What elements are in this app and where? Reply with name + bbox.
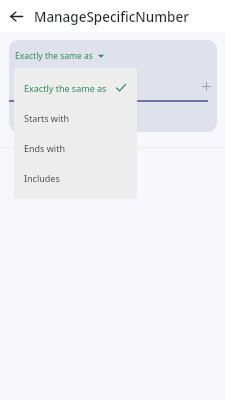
button[interactable]: Exactly the same as bbox=[14, 73, 137, 103]
staticText: Exactly the same as bbox=[24, 82, 107, 94]
button[interactable]: Ends with bbox=[14, 133, 137, 163]
button[interactable]: Exactly the same as bbox=[13, 49, 106, 63]
staticText: Includes bbox=[24, 172, 60, 184]
button[interactable]: Includes bbox=[14, 163, 137, 193]
staticText: Exactly the same as bbox=[15, 50, 93, 62]
button[interactable]: Add bbox=[196, 76, 216, 96]
button[interactable]: Back bbox=[5, 5, 28, 28]
button[interactable]: Starts with bbox=[14, 103, 137, 133]
staticText: ManageSpecificNumber bbox=[34, 8, 189, 26]
staticText: Starts with bbox=[24, 112, 70, 124]
staticText: Ends with bbox=[24, 142, 65, 154]
